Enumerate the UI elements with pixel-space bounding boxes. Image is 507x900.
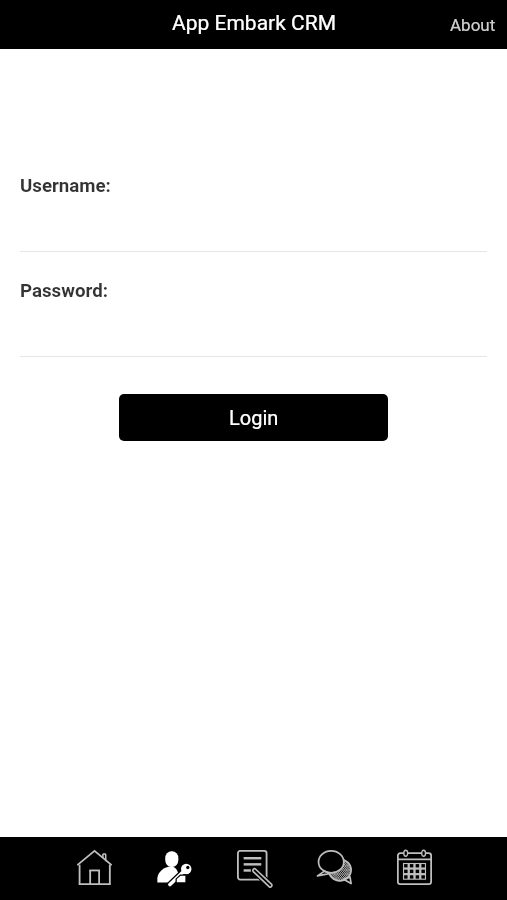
staticText: App Embark CRM	[172, 11, 336, 36]
button[interactable]: Calendar	[374, 837, 454, 900]
button[interactable]: Username input	[20, 200, 487, 252]
staticText: Login	[229, 406, 279, 429]
staticText: Username:	[20, 175, 111, 197]
button[interactable]: Login	[119, 394, 388, 441]
staticText: About	[450, 15, 496, 35]
button[interactable]: About	[433, 3, 507, 47]
button[interactable]: Home	[54, 837, 134, 900]
button[interactable]: Chat	[294, 837, 374, 900]
button[interactable]: Notes	[214, 837, 294, 900]
button[interactable]: Contacts	[134, 837, 214, 900]
button[interactable]: Password input	[20, 305, 487, 357]
staticText: Password:	[20, 280, 108, 302]
